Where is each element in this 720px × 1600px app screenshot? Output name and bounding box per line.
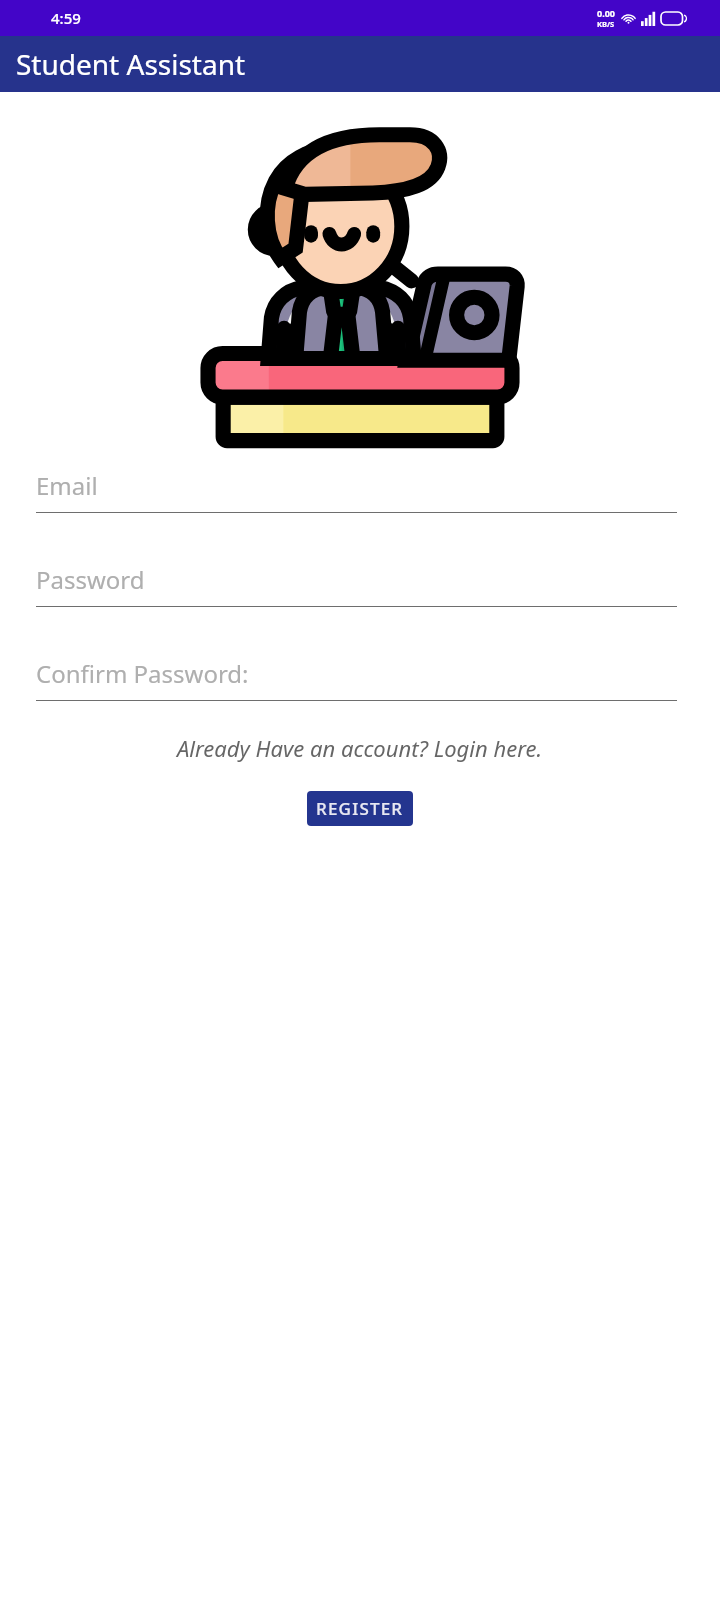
button[interactable]: Password [0,563,720,607]
button[interactable]: Email [0,469,720,513]
button[interactable]: Confirm Password: [0,657,720,701]
button[interactable]: REGISTER [307,791,413,826]
staticText: Student Assistant [16,45,246,83]
staticText: Password [36,563,145,596]
staticText: KB/S [597,19,615,29]
staticText: Email [36,469,98,502]
staticText: 0.00 [597,7,615,19]
staticText: Confirm Password: [36,657,249,690]
staticText: 4:59 [51,8,81,28]
button[interactable]: Already Have an account? Login here. [0,727,720,769]
staticText: REGISTER [316,797,404,820]
staticText: Already Have an account? Login here. [177,733,543,763]
